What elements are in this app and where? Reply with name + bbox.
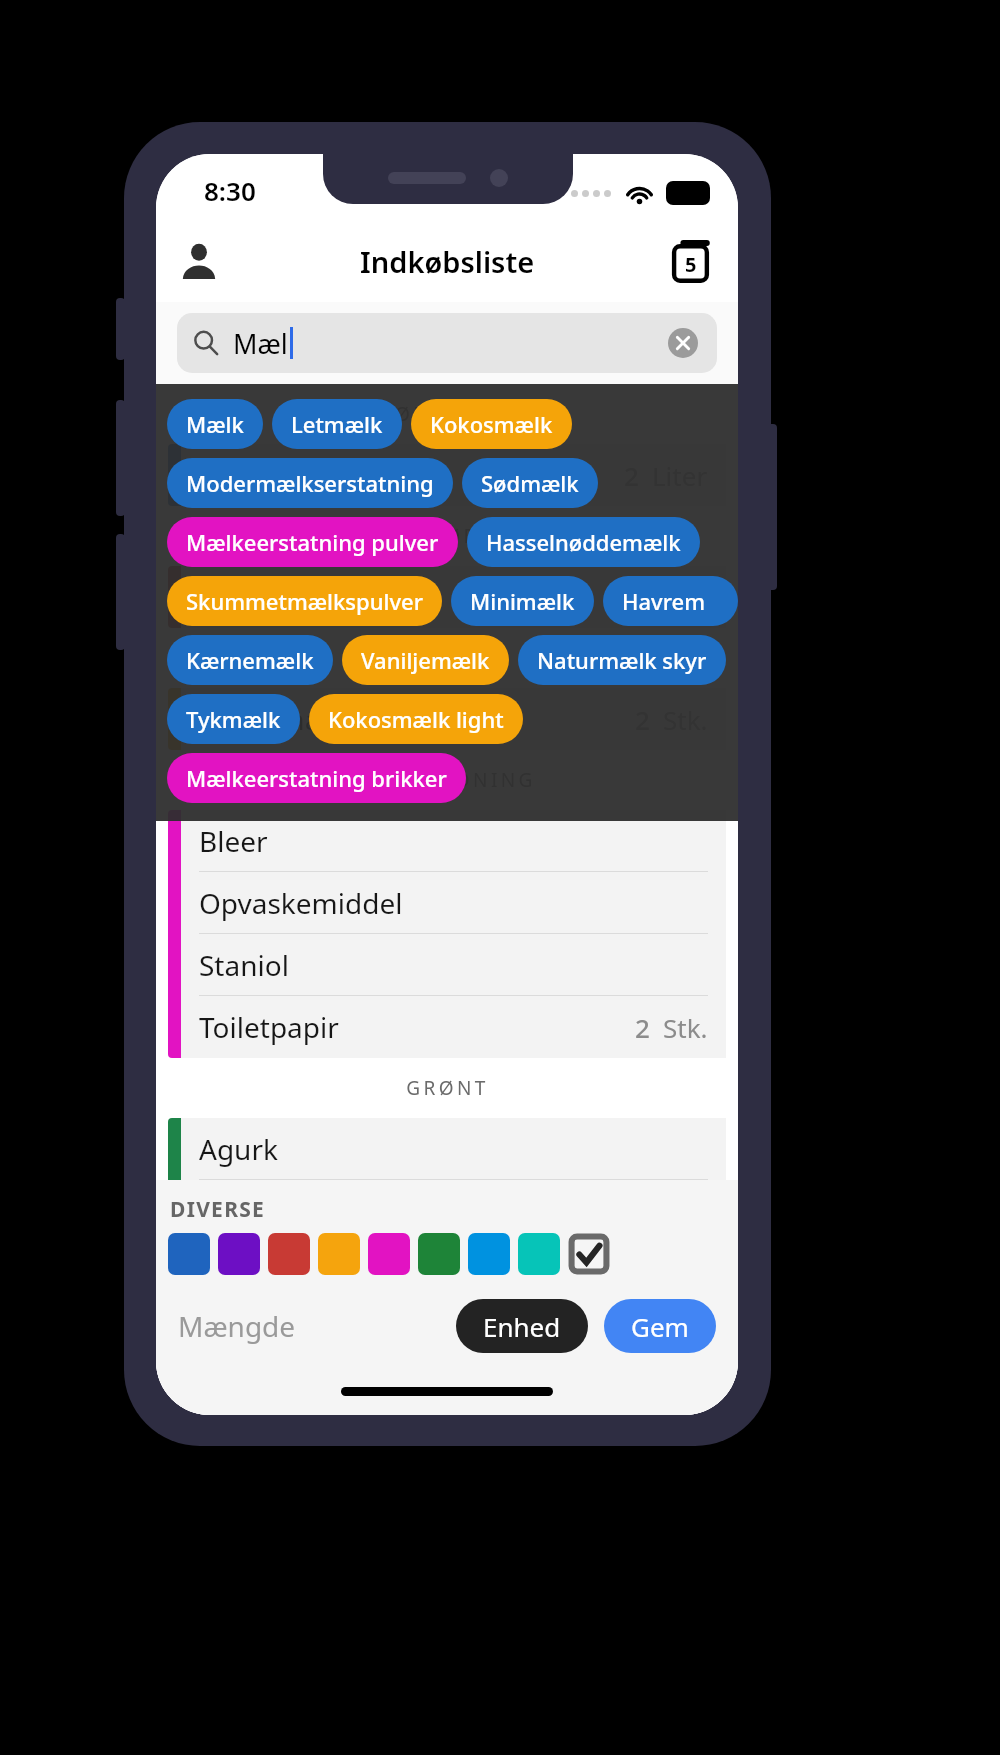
staticText: Opvaskemiddel: [199, 884, 403, 922]
staticText: 8:30: [204, 173, 256, 208]
button[interactable]: Letmælk: [272, 399, 402, 449]
staticText: Mængde: [178, 1307, 296, 1345]
button[interactable]: Farve: [268, 1233, 310, 1275]
button[interactable]: Kokosmælk: [411, 399, 572, 449]
staticText: 5: [685, 251, 697, 278]
button[interactable]: Lister: [664, 232, 722, 290]
button[interactable]: Kokosmælk light: [309, 694, 523, 744]
button[interactable]: Kærnemælk: [167, 635, 333, 685]
staticText: KØLEVARER: [380, 401, 515, 427]
staticText: Mælkeerstatning pulver: [186, 527, 439, 557]
staticText: HUSHOLDNING: [358, 767, 536, 793]
button[interactable]: Tomater: [181, 1180, 726, 1242]
button[interactable]: Vaniljemælk: [342, 635, 509, 685]
staticText: Indkøbsliste: [360, 242, 535, 281]
staticText: Mælkeerstatning brikker: [186, 763, 447, 793]
button[interactable]: Mæl: [177, 313, 717, 373]
button[interactable]: Sødmælk: [462, 458, 598, 508]
button[interactable]: Agurk: [181, 1118, 726, 1180]
button[interactable]: Rugbrød: [181, 566, 726, 628]
staticText: Modermælkserstatning: [186, 468, 434, 498]
button[interactable]: Skummetmælkspulver: [167, 576, 442, 626]
button[interactable]: Farve: [168, 1233, 210, 1275]
staticText: 2: [635, 1010, 650, 1045]
staticText: Letmælk: [291, 409, 383, 439]
button[interactable]: Farve: [468, 1233, 510, 1275]
button[interactable]: Profil: [170, 232, 228, 290]
staticText: Tykmælk: [186, 704, 281, 734]
staticText: Kokosmælk: [430, 409, 553, 439]
staticText: Hasselnøddemælk: [486, 527, 681, 557]
staticText: Mælk: [186, 409, 244, 439]
staticText: Havremælk: [622, 586, 719, 616]
button[interactable]: Farve: [318, 1233, 360, 1275]
button[interactable]: Farve: [418, 1233, 460, 1275]
staticText: GRØNT: [406, 1075, 489, 1101]
staticText: Gem: [631, 1309, 689, 1344]
staticText: Naturmælk skyr: [537, 645, 707, 675]
button[interactable]: Kokosmælk: [181, 688, 726, 750]
button[interactable]: Farve: [368, 1233, 410, 1275]
button[interactable]: Staniol: [181, 934, 726, 996]
staticText: KOLONIAL: [387, 645, 508, 671]
button[interactable]: Mælk: [181, 444, 726, 506]
staticText: BRØD: [414, 523, 481, 549]
staticText: Mæl: [233, 325, 288, 362]
button[interactable]: Farve: [218, 1233, 260, 1275]
button[interactable]: Vælg farve: [568, 1233, 610, 1275]
staticText: Minimælk: [470, 586, 575, 616]
staticText: Agurk: [199, 1130, 278, 1168]
staticText: Rugbrød: [199, 578, 314, 616]
staticText: Mælk: [199, 456, 271, 494]
button[interactable]: Havremælk: [603, 576, 738, 626]
staticText: Vaniljemælk: [361, 645, 490, 675]
staticText: Bleer: [199, 822, 268, 860]
button[interactable]: Farve: [518, 1233, 560, 1275]
button[interactable]: Mælkeerstatning brikker: [167, 753, 466, 803]
staticText: Skummetmælkspulver: [186, 586, 423, 616]
staticText: Staniol: [199, 946, 289, 984]
button[interactable]: Modermælkserstatning: [167, 458, 453, 508]
staticText: DIVERSE: [170, 1195, 266, 1224]
button[interactable]: Naturmælk skyr: [518, 635, 726, 685]
staticText: Tomater: [199, 1192, 309, 1230]
button[interactable]: Bleer: [181, 810, 726, 872]
button[interactable]: Mælk: [167, 399, 263, 449]
button[interactable]: Gem: [604, 1299, 716, 1353]
staticText: Kokosmælk: [199, 700, 352, 738]
staticText: Kærnemælk: [186, 645, 314, 675]
staticText: Kokosmælk light: [328, 704, 504, 734]
button[interactable]: Toiletpapir: [181, 996, 726, 1058]
button[interactable]: Hasselnøddemælk: [467, 517, 700, 567]
staticText: Enhed: [483, 1309, 561, 1344]
button[interactable]: Enhed: [456, 1299, 588, 1353]
staticText: Sødmælk: [481, 468, 579, 498]
button[interactable]: Opvaskemiddel: [181, 872, 726, 934]
button[interactable]: Mælkeerstatning pulver: [167, 517, 458, 567]
button[interactable]: Minimælk: [451, 576, 594, 626]
staticText: Toiletpapir: [199, 1008, 339, 1046]
staticText: Stk.: [663, 1010, 708, 1045]
button[interactable]: Tykmælk: [167, 694, 300, 744]
button[interactable]: Ryd: [665, 325, 701, 361]
